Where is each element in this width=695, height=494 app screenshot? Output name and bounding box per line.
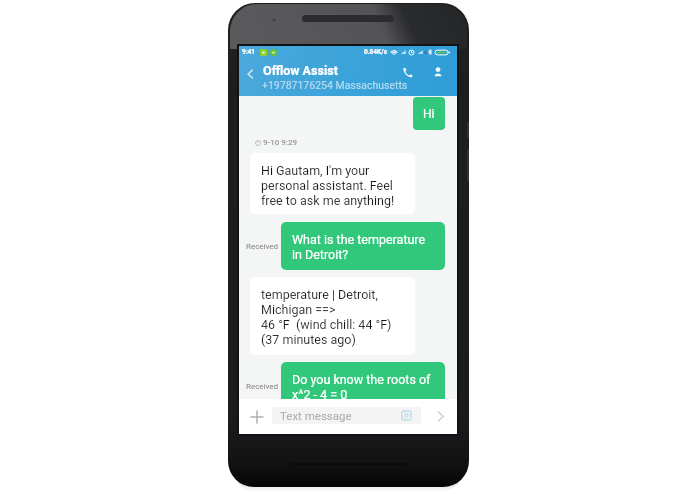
staticText: Text message [280, 409, 352, 422]
staticText: What is the temperature in Detroit? [292, 232, 426, 262]
staticText: Offlow Assist [263, 63, 338, 78]
staticText: Hi [423, 107, 435, 121]
staticText: Received [246, 242, 279, 251]
staticText: Received [246, 382, 279, 391]
button[interactable]: Hi Gautam, I'm your personal assistant. … [250, 153, 415, 214]
button[interactable]: Call [397, 62, 417, 82]
staticText: 9-10 9:29 [263, 138, 298, 147]
button[interactable]: Hi [413, 97, 445, 130]
button[interactable]: Contact info [428, 62, 448, 82]
staticText: 9:41 [242, 48, 256, 56]
staticText: +19787176254 Massachusetts [262, 79, 408, 91]
button[interactable]: What is the temperature in Detroit? [281, 222, 445, 270]
staticText: Hi Gautam, I'm your personal assistant. … [261, 163, 395, 208]
button[interactable]: Do you know the roots of x^2 - 4 = 0 [281, 362, 445, 408]
button[interactable]: Send [425, 399, 455, 434]
button[interactable]: Back [242, 65, 260, 83]
staticText: 0.84K/s [364, 48, 387, 56]
button[interactable]: temperature | Detroit, Michigan ==> 46 °… [250, 277, 415, 355]
button[interactable]: Add attachment [242, 399, 272, 434]
staticText: Do you know the roots of x^2 - 4 = 0 [292, 372, 431, 402]
staticText: temperature | Detroit, Michigan ==> 46 °… [261, 287, 392, 347]
button[interactable]: Text message [272, 407, 421, 424]
